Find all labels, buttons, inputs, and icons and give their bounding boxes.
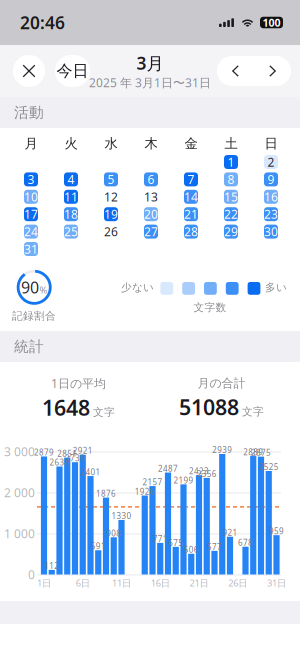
staticText: 17 <box>24 206 38 222</box>
staticText: 2879 <box>34 447 54 458</box>
staticText: 6日 <box>76 577 90 589</box>
staticText: 15 <box>224 189 238 205</box>
staticText: 2634 <box>49 457 69 468</box>
staticText: 20 <box>144 206 158 222</box>
staticText: 月 <box>24 135 37 152</box>
staticText: 16日 <box>151 577 170 589</box>
staticText: 木 <box>144 135 157 152</box>
staticText: 27 <box>144 224 158 239</box>
staticText: 2356 <box>197 469 217 479</box>
staticText: 26 <box>104 224 118 239</box>
staticText: 23 <box>264 206 278 222</box>
staticText: 112 <box>44 561 59 571</box>
staticText: 今日 <box>56 61 88 81</box>
staticText: 908 <box>106 528 121 539</box>
staticText: 2851 <box>57 448 77 459</box>
staticText: 577 <box>207 541 222 552</box>
staticText: 7 <box>187 171 194 187</box>
staticText: 2921 <box>73 445 93 456</box>
staticText: 2939 <box>212 445 232 455</box>
staticText: 675 <box>168 537 183 548</box>
staticText: 金 <box>184 135 197 152</box>
staticText: 2 <box>267 154 274 170</box>
staticText: 文字数 <box>193 301 226 314</box>
staticText: 9 <box>267 171 274 187</box>
staticText: 1876 <box>96 488 116 499</box>
staticText: 日 <box>264 135 277 152</box>
staticText: 20:46 <box>20 11 65 34</box>
staticText: 1 <box>227 154 234 170</box>
staticText: 3 000 <box>4 443 35 459</box>
staticText: 771 <box>153 534 168 544</box>
staticText: 火 <box>64 135 77 152</box>
button[interactable]: 閉じる <box>13 55 45 87</box>
staticText: 2025 年 3月1日〜31日 <box>89 74 211 90</box>
staticText: 8 <box>227 171 234 187</box>
staticText: 1日の平均 <box>51 375 106 391</box>
staticText: 0 <box>28 566 35 582</box>
staticText: 2 000 <box>4 484 35 500</box>
staticText: 678 <box>238 537 253 548</box>
staticText: 25 <box>64 224 78 239</box>
staticText: 1 000 <box>4 525 35 541</box>
staticText: 31 <box>24 241 38 257</box>
staticText: 活動 <box>14 103 44 121</box>
staticText: 921 <box>222 527 237 538</box>
staticText: 6 <box>147 171 154 187</box>
staticText: 12 <box>104 189 118 205</box>
staticText: % <box>39 284 47 296</box>
staticText: 51088 <box>179 393 239 421</box>
staticText: 22 <box>224 206 238 222</box>
staticText: 2423 <box>189 466 209 476</box>
staticText: 4 <box>67 171 74 187</box>
staticText: 統計 <box>14 337 44 355</box>
button[interactable]: 次の月 <box>254 56 291 86</box>
staticText: 10 <box>24 189 38 205</box>
staticText: 3 <box>27 171 34 187</box>
staticText: 30 <box>264 224 278 239</box>
staticText: 21 <box>184 206 198 222</box>
staticText: 2401 <box>80 467 100 477</box>
staticText: 2199 <box>173 475 193 486</box>
staticText: 100 <box>262 15 280 30</box>
staticText: 5 <box>107 171 114 187</box>
staticText: 土 <box>224 135 237 152</box>
staticText: 1330 <box>111 511 131 521</box>
staticText: 2157 <box>142 477 162 487</box>
staticText: 11日 <box>112 577 131 589</box>
staticText: 28 <box>184 224 198 239</box>
staticText: 19 <box>104 206 118 222</box>
staticText: 11 <box>64 189 78 205</box>
staticText: 591 <box>91 541 106 552</box>
staticText: 13 <box>144 189 158 205</box>
staticText: 506 <box>184 544 199 555</box>
staticText: 29 <box>224 224 238 239</box>
staticText: 1926 <box>135 486 155 497</box>
staticText: 水 <box>104 135 117 152</box>
staticText: 文字 <box>93 406 115 419</box>
staticText: 2875 <box>251 447 271 458</box>
staticText: 少ない <box>121 281 154 294</box>
staticText: 2739 <box>65 453 85 463</box>
staticText: 文字 <box>242 405 264 418</box>
staticText: 14 <box>184 189 198 205</box>
staticText: 2889 <box>243 447 263 457</box>
staticText: 26日 <box>228 577 247 589</box>
staticText: 959 <box>269 526 284 536</box>
staticText: 21日 <box>189 577 208 589</box>
staticText: 2487 <box>158 463 178 474</box>
staticText: 記録割合 <box>12 309 56 322</box>
staticText: 18 <box>64 206 78 222</box>
staticText: 2525 <box>259 462 279 472</box>
staticText: 90 <box>21 277 39 298</box>
staticText: 1648 <box>42 393 90 422</box>
staticText: 16 <box>264 189 278 205</box>
staticText: 1日 <box>37 577 51 589</box>
staticText: 月の合計 <box>197 376 245 391</box>
staticText: 多い <box>265 281 287 294</box>
button[interactable]: 今日 <box>55 55 90 87</box>
staticText: 3月 <box>136 51 163 74</box>
staticText: 31日 <box>267 577 286 589</box>
staticText: 24 <box>24 224 38 239</box>
button[interactable]: 前の月 <box>217 56 254 86</box>
